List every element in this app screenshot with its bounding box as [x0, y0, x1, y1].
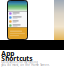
staticText: Quick actions for everything — [1, 60, 38, 64]
staticText: Shortcuts — [1, 54, 32, 63]
staticText: you do most, on the Home Screen. — [1, 63, 50, 67]
staticText: App — [1, 49, 14, 58]
